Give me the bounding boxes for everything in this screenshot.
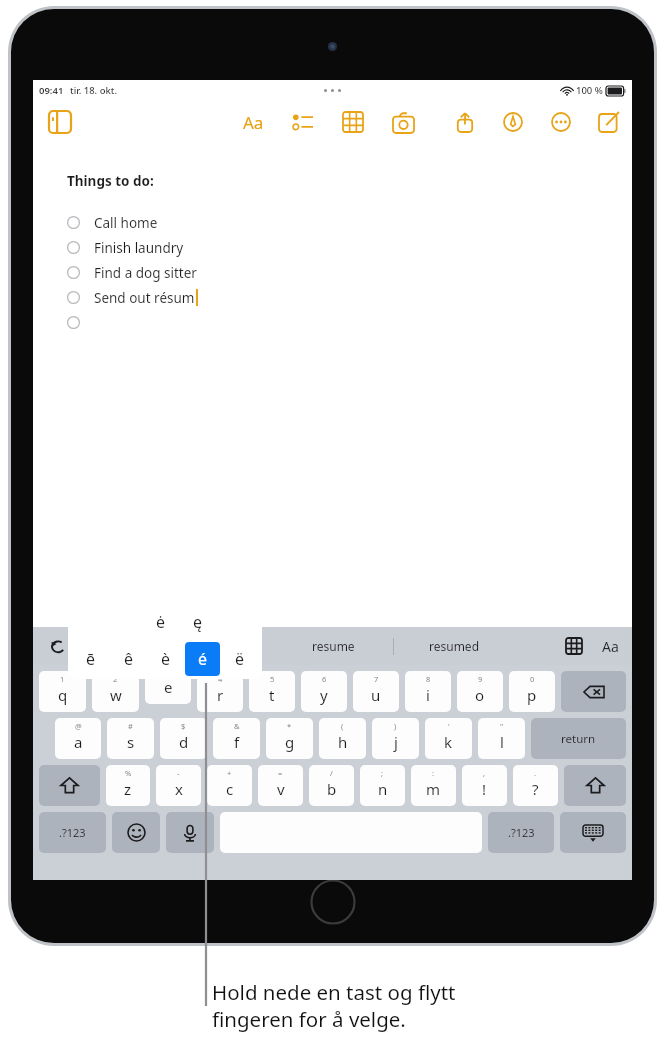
button[interactable] [561, 671, 626, 712]
button[interactable]: Hide keyboard [560, 812, 626, 853]
button[interactable]: return [531, 718, 626, 759]
button[interactable]: Markup [498, 107, 528, 137]
button[interactable]: Format [597, 633, 623, 659]
staticText: v [277, 779, 285, 799]
button[interactable]: resume [273, 627, 393, 665]
staticText: a [74, 732, 83, 752]
staticText: resumed [429, 638, 480, 654]
staticText: c [226, 779, 234, 799]
staticText: ę [193, 611, 203, 633]
staticText: è [161, 648, 171, 670]
staticText: n [378, 779, 388, 799]
button[interactable]: + [207, 765, 252, 806]
button[interactable]: 9 [457, 671, 503, 712]
staticText: + [227, 768, 232, 778]
button[interactable]: ( [319, 718, 366, 759]
staticText: @ [75, 721, 82, 731]
button[interactable]: Undo [43, 631, 73, 661]
button[interactable]: 0 [509, 671, 555, 712]
button[interactable]: 3 [145, 663, 191, 704]
button[interactable]: ę [179, 605, 216, 639]
button[interactable]: " [478, 718, 525, 759]
staticText: u [371, 685, 381, 705]
button[interactable]: Finish laundry [67, 235, 632, 260]
button[interactable]: Format [238, 107, 268, 137]
button[interactable]: . [513, 765, 558, 806]
button[interactable]: 8 [405, 671, 451, 712]
staticText: 4 [218, 674, 223, 684]
button[interactable]: ) [372, 718, 419, 759]
button[interactable]: Numbers [39, 812, 106, 853]
staticText: * [287, 721, 292, 731]
button[interactable]: Sidebar [43, 105, 77, 139]
staticText: ē [86, 648, 96, 670]
staticText: e [164, 677, 173, 697]
staticText: q [58, 685, 68, 705]
button[interactable]: Checklist [288, 107, 318, 137]
staticText: Call home [94, 214, 158, 232]
staticText: = [278, 768, 283, 778]
button[interactable]: # [107, 718, 154, 759]
staticText: Finish laundry [94, 239, 184, 257]
button[interactable]: Emoji [112, 812, 160, 853]
button[interactable]: é [185, 642, 220, 676]
staticText: ) [394, 721, 397, 731]
staticText: o [475, 685, 485, 705]
button[interactable]: è [148, 642, 183, 676]
button[interactable]: 7 [353, 671, 399, 712]
staticText: p [527, 685, 537, 705]
button[interactable]: % [106, 765, 150, 806]
staticText: g [285, 732, 295, 752]
button[interactable] [67, 310, 632, 335]
staticText: s [127, 732, 135, 752]
button[interactable]: Table [561, 633, 587, 659]
button[interactable]: Share [450, 107, 480, 137]
staticText: 8 [426, 674, 431, 684]
button[interactable]: @ [55, 718, 101, 759]
button[interactable]: resumed [394, 627, 514, 665]
button[interactable]: Table [338, 107, 368, 137]
staticText: ë [235, 648, 245, 670]
button[interactable]: 4 [197, 671, 243, 712]
button[interactable]: ' [425, 718, 472, 759]
button[interactable]: = [258, 765, 303, 806]
button[interactable]: More [546, 107, 576, 137]
staticText: h [338, 732, 348, 752]
button[interactable]: - [156, 765, 201, 806]
button[interactable]: * [266, 718, 313, 759]
button[interactable]: Camera [388, 107, 418, 137]
staticText: 2 [113, 674, 118, 684]
button[interactable]: & [213, 718, 260, 759]
button[interactable]: Compose [594, 107, 624, 137]
button[interactable]: ê [111, 642, 146, 676]
staticText: .?123 [59, 825, 86, 840]
button[interactable]: , [462, 765, 507, 806]
button[interactable]: ⇧r [564, 765, 626, 806]
staticText: b [327, 779, 337, 799]
staticText: Find a dog sitter [94, 264, 197, 282]
button[interactable]: ë [222, 642, 257, 676]
staticText: Aa [602, 637, 619, 656]
button[interactable]: 1 [39, 671, 86, 712]
button[interactable]: 6 [301, 671, 347, 712]
button[interactable]: Send out résum [67, 285, 632, 310]
button[interactable]: Call home [67, 210, 632, 235]
button[interactable]: Numbers [488, 812, 554, 853]
button[interactable]: 5 [249, 671, 295, 712]
button[interactable]: ; [360, 765, 405, 806]
staticText: # [128, 721, 133, 731]
button[interactable]: Find a dog sitter [67, 260, 632, 285]
staticText: ė [156, 611, 166, 633]
button[interactable]: ė [142, 605, 179, 639]
button[interactable]: : [411, 765, 456, 806]
button[interactable] [39, 765, 100, 806]
button[interactable]: Dictate [166, 812, 214, 853]
button[interactable]: / [309, 765, 354, 806]
button[interactable]: 2 [92, 671, 139, 712]
staticText: .?123 [508, 825, 535, 840]
button[interactable]: $ [160, 718, 207, 759]
button[interactable]: ē [73, 642, 109, 676]
staticText: f [234, 732, 240, 752]
staticText: j [394, 732, 398, 752]
